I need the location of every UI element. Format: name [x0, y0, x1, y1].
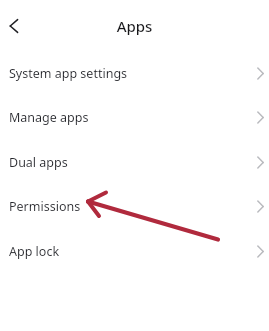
staticText: Manage apps	[9, 109, 89, 126]
button[interactable]: System app settings	[0, 51, 269, 95]
button[interactable]: App lock	[0, 229, 269, 274]
staticText: Apps	[0, 16, 269, 36]
button[interactable]: Back	[0, 10, 32, 42]
button[interactable]: Dual apps	[0, 140, 269, 184]
staticText: App lock	[9, 243, 60, 260]
staticText: System app settings	[9, 65, 128, 82]
staticText: Permissions	[9, 198, 81, 215]
button[interactable]: Permissions	[0, 184, 269, 229]
staticText: Dual apps	[9, 154, 68, 171]
button[interactable]: Manage apps	[0, 95, 269, 140]
